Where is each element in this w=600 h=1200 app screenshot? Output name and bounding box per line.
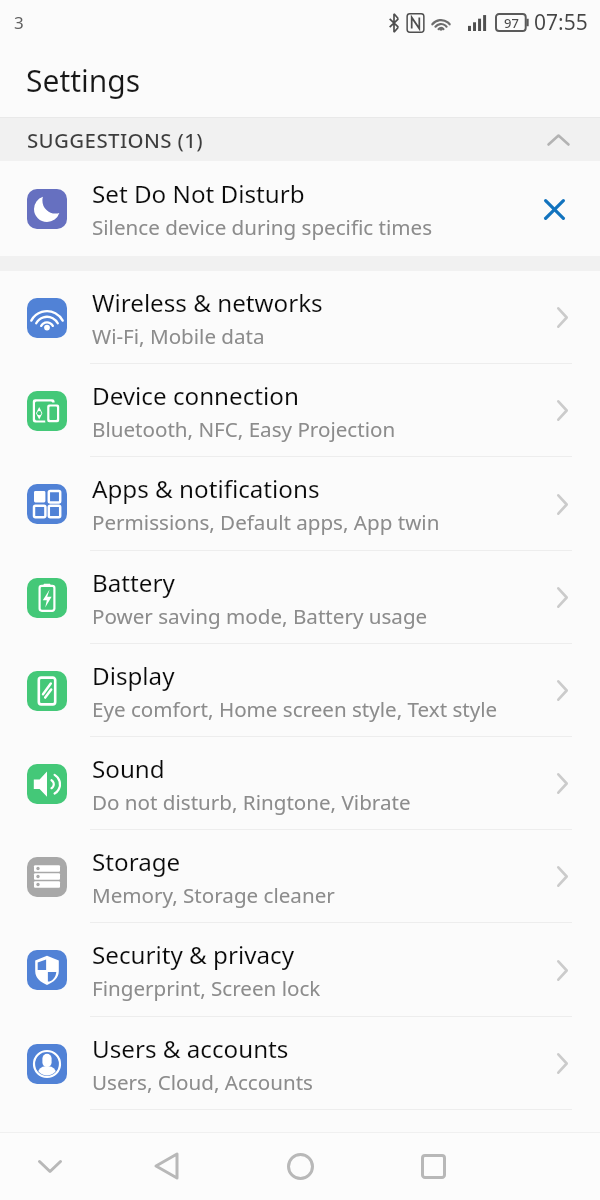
staticText: Fingerprint, Screen lock: [92, 974, 321, 1002]
button[interactable]: Apps & notifications: [0, 457, 600, 551]
staticText: Display: [92, 659, 175, 692]
button[interactable]: Users & accounts: [0, 1017, 600, 1110]
button[interactable]: Dismiss suggestion: [531, 186, 577, 232]
button[interactable]: Wireless & networks: [0, 271, 600, 364]
staticText: Wireless & networks: [92, 286, 323, 319]
button[interactable]: Sound: [0, 737, 600, 830]
button[interactable]: Recent apps: [391, 1132, 475, 1200]
staticText: Storage: [92, 845, 181, 878]
staticText: Settings: [26, 60, 141, 101]
staticText: Sound: [92, 752, 165, 785]
staticText: Security & privacy: [92, 938, 294, 971]
button[interactable]: Security & privacy: [0, 923, 600, 1017]
staticText: Set Do Not Disturb: [92, 177, 305, 210]
staticText: Bluetooth, NFC, Easy Projection: [92, 415, 396, 443]
button[interactable]: Home: [258, 1132, 342, 1200]
staticText: Users, Cloud, Accounts: [92, 1068, 313, 1096]
button[interactable]: Collapse suggestions: [538, 120, 578, 160]
staticText: Wi-Fi, Mobile data: [92, 322, 265, 350]
button[interactable]: Hide navigation bar: [8, 1132, 92, 1200]
button[interactable]: Back: [124, 1132, 208, 1200]
button[interactable]: Set Do Not Disturb: [0, 161, 600, 256]
staticText: Users & accounts: [92, 1032, 289, 1065]
staticText: 3: [14, 11, 24, 34]
staticText: 97: [504, 14, 519, 31]
button[interactable]: Storage: [0, 830, 600, 923]
staticText: Permissions, Default apps, App twin: [92, 508, 440, 536]
button[interactable]: Display: [0, 644, 600, 737]
staticText: Do not disturb, Ringtone, Vibrate: [92, 788, 411, 816]
staticText: 07:55: [534, 8, 588, 37]
staticText: Power saving mode, Battery usage: [92, 602, 428, 630]
staticText: SUGGESTIONS (1): [27, 126, 204, 154]
staticText: Battery: [92, 566, 175, 599]
button[interactable]: Device connection: [0, 364, 600, 457]
staticText: Memory, Storage cleaner: [92, 881, 335, 909]
button[interactable]: Battery: [0, 551, 600, 644]
staticText: Apps & notifications: [92, 472, 320, 505]
staticText: Eye comfort, Home screen style, Text sty…: [92, 695, 498, 723]
staticText: Silence device during specific times: [92, 213, 433, 241]
staticText: Device connection: [92, 379, 299, 412]
button[interactable]: SUGGESTIONS (1): [0, 118, 600, 161]
